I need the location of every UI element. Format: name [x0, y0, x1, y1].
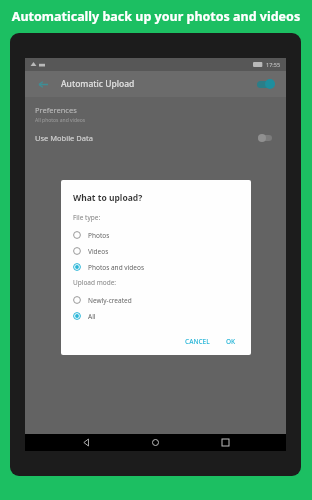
- staticText: File type:: [73, 213, 101, 222]
- staticText: All: [88, 312, 96, 321]
- button[interactable]: Recent apps: [217, 434, 234, 451]
- staticText: All photos and videos: [35, 117, 86, 124]
- staticText: Newly-created: [88, 296, 132, 305]
- staticText: CANCEL: [185, 337, 210, 346]
- button[interactable]: Back: [35, 76, 51, 92]
- staticText: Use Mobile Data: [35, 133, 93, 143]
- button[interactable]: Home: [147, 434, 164, 451]
- staticText: Photos: [88, 231, 110, 240]
- staticText: OK: [226, 337, 236, 346]
- staticText: Videos: [88, 247, 109, 256]
- staticText: Photos and videos: [88, 263, 145, 272]
- button[interactable]: Newly-created: [73, 292, 241, 308]
- button[interactable]: CANCEL: [180, 334, 215, 349]
- button[interactable]: Use Mobile Data: [25, 124, 286, 152]
- button[interactable]: Back: [78, 434, 95, 451]
- button[interactable]: All: [73, 308, 241, 324]
- staticText: Upload mode:: [73, 278, 117, 287]
- button[interactable]: Photos and videos: [73, 259, 241, 275]
- button[interactable]: OK: [221, 334, 241, 349]
- button[interactable]: Automatic upload toggle: [254, 77, 276, 91]
- staticText: Preferences: [35, 105, 77, 115]
- button[interactable]: Videos: [73, 243, 241, 259]
- staticText: Automatic Upload: [61, 78, 135, 90]
- staticText: What to upload?: [73, 192, 143, 204]
- staticText: 17:55: [266, 61, 281, 68]
- button[interactable]: Photos: [73, 227, 241, 243]
- staticText: Automatically back up your photos and vi…: [6, 8, 306, 25]
